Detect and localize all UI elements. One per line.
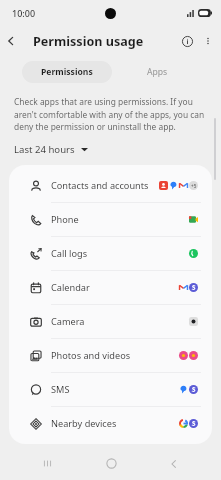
staticText: Permissions — [41, 66, 93, 78]
button[interactable]: More options — [198, 31, 218, 51]
staticText: Check apps that are using permissions. I… — [14, 96, 205, 132]
staticText: Last 24 hours — [14, 143, 75, 156]
button[interactable]: Recent apps — [30, 447, 64, 480]
staticText: Nearby devices — [51, 417, 117, 430]
staticText: Contacts and accounts — [51, 179, 149, 192]
staticText: Camera — [51, 315, 85, 328]
button[interactable]: Camera — [9, 305, 212, 339]
button[interactable]: Contacts and accounts — [9, 169, 212, 203]
staticText: Call logs — [51, 247, 88, 260]
button[interactable]: Photos and videos — [9, 339, 212, 373]
staticText: +5 — [191, 183, 197, 189]
button[interactable]: Back — [0, 30, 22, 52]
button[interactable]: Phone — [9, 203, 212, 237]
button[interactable]: Information — [176, 30, 198, 52]
button[interactable]: Apps — [112, 61, 203, 83]
staticText: Photos and videos — [51, 349, 131, 362]
staticText: Phone — [51, 213, 79, 226]
staticText: Apps — [147, 66, 168, 78]
button[interactable]: Home — [94, 447, 128, 480]
button[interactable]: Call logs — [9, 237, 212, 271]
staticText: Permission usage — [33, 33, 144, 50]
button[interactable]: Permissions — [22, 61, 112, 83]
button[interactable]: Nearby devices — [9, 407, 212, 440]
staticText: SMS — [51, 383, 70, 396]
button[interactable]: SMS — [9, 373, 212, 407]
button[interactable]: Last 24 hours — [14, 143, 88, 156]
button[interactable]: Calendar — [9, 271, 212, 305]
button[interactable]: Back — [157, 447, 191, 480]
staticText: 10:00 — [12, 7, 36, 19]
staticText: Calendar — [51, 281, 90, 294]
